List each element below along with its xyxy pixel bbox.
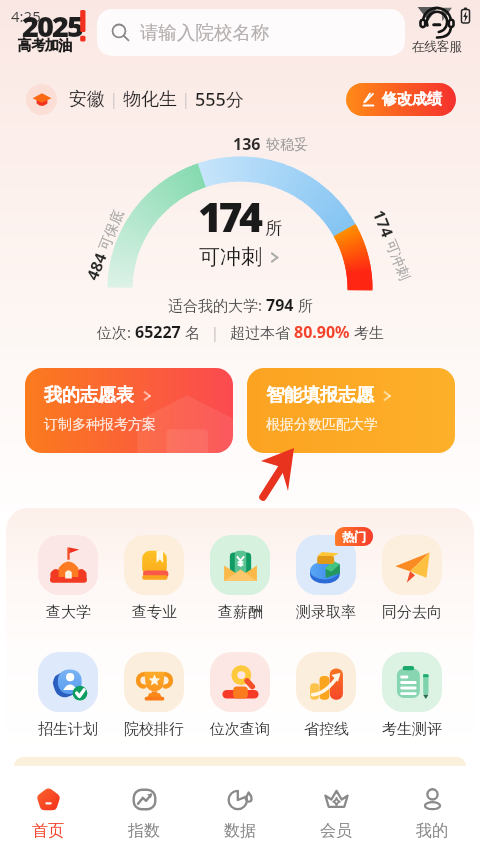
staticText: |	[177, 88, 195, 110]
staticText: 根据分数匹配大学	[266, 416, 378, 434]
staticText: 较稳妥	[266, 136, 308, 154]
staticText: 同分去向	[382, 603, 442, 622]
staticText: 我的志愿表	[44, 384, 134, 407]
staticText: 超过本省	[230, 322, 294, 342]
staticText: 考生测评	[382, 720, 442, 739]
staticText: 65227	[135, 321, 181, 343]
staticText: 会员	[320, 821, 352, 841]
button[interactable]: 我的	[384, 766, 480, 853]
staticText: |	[105, 88, 123, 110]
button[interactable]: 请输入院校名称	[97, 9, 405, 56]
staticText: 可冲刺	[199, 244, 262, 270]
button[interactable]: 智能填报志愿	[247, 368, 455, 453]
staticText: 高考加油	[18, 37, 72, 55]
button[interactable]: 修改成绩	[346, 83, 456, 116]
staticText: 555分	[195, 87, 244, 112]
staticText: 院校排行	[124, 720, 184, 739]
button[interactable]: 指数	[96, 766, 192, 853]
button[interactable]: 首页	[0, 766, 96, 853]
button[interactable]: 查专业	[123, 535, 185, 622]
staticText: 修改成绩	[382, 90, 442, 109]
staticText: 首页	[32, 821, 64, 841]
button[interactable]: 174	[0, 188, 480, 270]
button[interactable]: 同分去向	[381, 535, 443, 622]
staticText: 测录取率	[296, 603, 356, 622]
staticText: 安徽	[69, 88, 105, 111]
staticText: 174	[368, 207, 399, 241]
staticText: 查专业	[132, 603, 177, 622]
staticText: 查薪酬	[218, 603, 263, 622]
staticText: 数据	[224, 821, 256, 841]
staticText: 在线客服	[412, 38, 462, 54]
staticText: 136	[233, 133, 261, 155]
button[interactable]: 在线客服	[406, 5, 468, 55]
staticText: 所	[294, 295, 313, 315]
staticText: 可保底	[96, 208, 128, 253]
button[interactable]: 查薪酬	[209, 535, 271, 622]
staticText: 省控线	[304, 720, 349, 739]
staticText: 位次查询	[210, 720, 270, 739]
button[interactable]: 热门	[295, 535, 357, 622]
staticText: 484	[81, 249, 112, 283]
button[interactable]: 院校排行	[123, 652, 185, 739]
button[interactable]: 考生测评	[381, 652, 443, 739]
staticText: 请输入院校名称	[140, 21, 270, 44]
staticText: 可冲刺	[381, 237, 413, 283]
staticText: 招生计划	[38, 720, 98, 739]
staticText: 4:25	[11, 6, 41, 26]
staticText: 794	[266, 294, 294, 316]
staticText: 物化生	[123, 88, 177, 111]
staticText: 所	[265, 218, 282, 239]
staticText: 我的	[416, 821, 448, 841]
staticText: 考生	[350, 322, 384, 342]
button[interactable]: 省控线	[295, 652, 357, 739]
button[interactable]: 数据	[192, 766, 288, 853]
staticText: 智能填报志愿	[266, 384, 374, 407]
staticText: 订制多种报考方案	[44, 416, 156, 434]
button[interactable]: 会员	[288, 766, 384, 853]
staticText: 名	[181, 322, 200, 342]
button[interactable]: 招生计划	[37, 652, 99, 739]
staticText: 指数	[128, 821, 160, 841]
staticText: 查大学	[46, 603, 91, 622]
staticText: 适合我的大学:	[168, 295, 266, 315]
button[interactable]: 我的志愿表	[25, 368, 233, 453]
staticText: 热门	[342, 529, 366, 544]
staticText: 2025	[22, 6, 82, 45]
staticText: 位次:	[97, 322, 135, 342]
button[interactable]: 查大学	[37, 535, 99, 622]
staticText: |	[200, 323, 230, 342]
staticText: 174	[198, 188, 260, 244]
staticText: 80.90%	[294, 321, 350, 343]
button[interactable]: 位次查询	[209, 652, 271, 739]
